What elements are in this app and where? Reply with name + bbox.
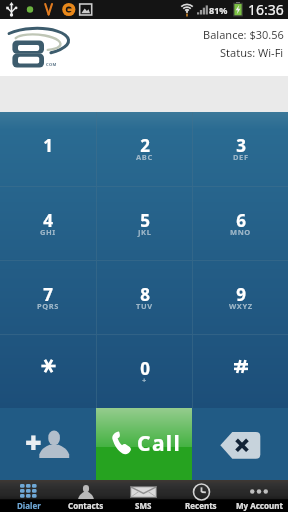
staticText: WXYZ	[229, 301, 253, 311]
button[interactable]: 2	[97, 112, 192, 186]
staticText: GHI	[40, 227, 56, 237]
staticText: PQRS	[37, 301, 60, 311]
staticText: MNO	[230, 227, 251, 237]
button[interactable]: 3	[193, 112, 288, 186]
staticText: 0	[140, 357, 150, 380]
staticText: SMS	[135, 500, 152, 511]
staticText: TUV	[136, 301, 153, 311]
staticText: Recents	[185, 500, 217, 511]
staticText: 6	[236, 209, 246, 232]
staticText: 7	[43, 283, 53, 306]
button[interactable]: 9	[193, 261, 288, 334]
staticText: ABC	[136, 152, 153, 162]
staticText: Dialer	[17, 500, 41, 511]
button[interactable]: 6	[193, 187, 288, 260]
button[interactable]: 5	[97, 187, 192, 260]
button[interactable]: 0	[97, 335, 192, 408]
staticText: Call	[137, 429, 182, 458]
button[interactable]	[193, 335, 288, 408]
button[interactable]: Backspace	[192, 408, 288, 480]
button[interactable]: Contacts	[57, 480, 114, 512]
button[interactable]	[0, 335, 96, 408]
staticText: 2	[140, 134, 150, 157]
staticText: 3	[236, 134, 246, 157]
staticText: 5	[140, 209, 150, 232]
staticText: DEF	[233, 152, 249, 162]
staticText: COM	[46, 62, 57, 67]
button[interactable]: Add contact	[0, 408, 96, 480]
staticText: 4	[43, 209, 53, 232]
staticText: JKL	[138, 227, 152, 237]
button[interactable]: SMS	[114, 480, 172, 512]
staticText: 16:36	[248, 0, 284, 19]
button[interactable]: My Account	[230, 480, 288, 512]
button[interactable]: Dialer	[0, 480, 57, 512]
button[interactable]: 7	[0, 261, 96, 334]
button[interactable]: Recents	[172, 480, 230, 512]
staticText: +	[142, 375, 147, 385]
staticText: 8	[140, 283, 150, 306]
button[interactable]: 4	[0, 187, 96, 260]
staticText: 81%	[209, 4, 228, 16]
staticText: 9	[236, 283, 246, 306]
staticText: Balance: $30.56	[203, 27, 284, 42]
staticText: Status: Wi-Fi	[220, 45, 284, 60]
staticText: My Account	[236, 500, 283, 511]
button[interactable]: Call	[96, 408, 192, 480]
staticText: Contacts	[68, 500, 104, 511]
button[interactable]: 8	[97, 261, 192, 334]
staticText: 1	[43, 134, 53, 157]
button[interactable]: 1	[0, 112, 96, 186]
